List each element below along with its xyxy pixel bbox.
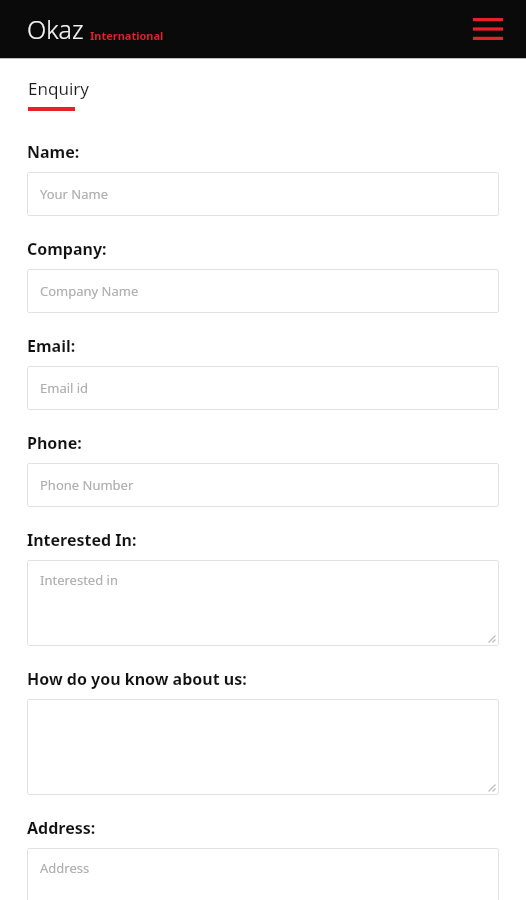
staticText: Your Name [40, 185, 109, 203]
button[interactable]: Your Name [27, 172, 499, 216]
staticText: Email: [27, 335, 76, 357]
staticText: Enquiry [28, 77, 89, 100]
button[interactable]: Company Name [27, 269, 499, 313]
staticText: Address: [27, 817, 96, 839]
button[interactable]: Email id [27, 366, 499, 410]
staticText: Email id [40, 379, 89, 397]
staticText: Company Name [40, 282, 139, 300]
staticText: Phone Number [40, 476, 134, 494]
button[interactable] [27, 699, 499, 795]
staticText: International [90, 28, 164, 43]
button[interactable]: Phone Number [27, 463, 499, 507]
staticText: Interested in [40, 571, 118, 589]
button[interactable]: Okaz [27, 12, 164, 46]
staticText: Name: [27, 141, 80, 163]
staticText: Interested In: [27, 529, 137, 551]
staticText: Phone: [27, 432, 82, 454]
staticText: Address [40, 859, 90, 877]
staticText: Okaz [27, 12, 84, 46]
staticText: Company: [27, 238, 107, 260]
button[interactable]: Address [27, 848, 499, 900]
button[interactable]: Interested in [27, 560, 499, 646]
button[interactable]: Open navigation menu [468, 9, 508, 49]
staticText: How do you know about us: [27, 668, 247, 690]
